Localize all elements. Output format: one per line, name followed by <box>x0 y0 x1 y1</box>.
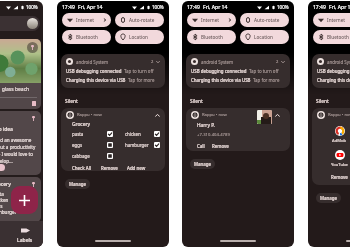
staticText: 2 <box>276 59 279 65</box>
staticText: Auto-rotate <box>254 17 280 23</box>
staticText: Manage <box>194 161 212 167</box>
staticText: Silent <box>65 98 78 105</box>
staticText: Silent <box>316 98 329 105</box>
staticText: android System <box>76 59 109 65</box>
button[interactable]: chicken <box>125 131 160 137</box>
button[interactable]: Call <box>197 143 205 149</box>
staticText: eggs <box>0 203 3 209</box>
button[interactable]: Auto-rotate <box>240 13 289 27</box>
button[interactable]: Remove <box>212 143 229 149</box>
button[interactable]: Bluetooth <box>62 30 111 44</box>
staticText: App idea <box>0 126 13 133</box>
staticText: hamburger <box>0 209 17 215</box>
button[interactable]: pasta <box>66 131 113 137</box>
button[interactable]: Pin <box>0 39 41 109</box>
staticText: about a productivity <box>0 144 36 150</box>
staticText: 2 <box>151 59 154 65</box>
button[interactable]: cabbage <box>66 153 113 159</box>
staticText: eggs <box>72 142 82 148</box>
other: Expand <box>156 60 160 64</box>
staticText: Sea glass beach <box>0 86 30 93</box>
staticText: Bluetooth <box>76 34 98 40</box>
staticText: Rappu • now <box>328 112 350 118</box>
button[interactable]: App idea <box>0 111 41 175</box>
staticText: Tap to turn off USB... <box>124 68 160 74</box>
button[interactable]: Remove <box>331 174 348 180</box>
staticText: 17:49 <box>62 4 75 11</box>
staticText: USB debugging connected <box>66 68 122 74</box>
staticText: pasta <box>0 191 4 197</box>
staticText: Rappu • now <box>202 112 227 118</box>
other: Pin <box>31 116 36 121</box>
staticText: Fri, Apr 14 <box>329 4 350 11</box>
staticText: USB debugging connected <box>191 68 247 74</box>
button[interactable]: Collapse <box>155 113 160 118</box>
staticText: AdMob <box>332 138 347 144</box>
staticText: Auto-rotate <box>129 17 155 23</box>
staticText: Silent <box>190 98 203 105</box>
button[interactable]: Grocery <box>0 177 41 222</box>
staticText: 100% <box>26 4 38 10</box>
staticText: Location <box>254 34 273 40</box>
button[interactable]: Manage <box>190 159 215 169</box>
staticText: chicken <box>125 131 141 137</box>
staticText: Tap to turn off USB... <box>249 68 285 74</box>
staticText: hamburger <box>125 142 149 148</box>
button[interactable]: Remove <box>101 165 118 171</box>
staticText: 17:49 <box>187 4 200 11</box>
staticText: Manage <box>320 195 338 201</box>
staticText: pasta <box>72 131 84 137</box>
staticText: app I would love to <box>0 151 34 157</box>
staticText: Tap for more opt... <box>253 77 285 83</box>
staticText: +7-310-404-4789 <box>197 132 230 138</box>
button[interactable]: Auto-rotate <box>115 13 164 27</box>
button[interactable]: Internet <box>187 13 236 27</box>
button[interactable]: Check All <box>72 165 92 171</box>
staticText: Charging this device via USB <box>191 77 251 83</box>
staticText: Charging this device via USB <box>66 77 126 83</box>
button[interactable]: AdMob <box>332 126 347 144</box>
staticText: Location <box>129 34 148 40</box>
staticText: Grocery <box>72 121 91 128</box>
staticText: Internet <box>201 17 220 23</box>
button[interactable]: Location <box>240 30 289 44</box>
button[interactable]: eggs <box>66 142 113 148</box>
button[interactable]: Manage <box>316 193 341 203</box>
staticText: Manage <box>69 181 87 187</box>
button[interactable]: Create note <box>11 186 38 214</box>
staticText: I had an awesome idea <box>0 137 41 143</box>
button[interactable] <box>0 16 40 31</box>
other: Expand <box>281 60 285 64</box>
staticText: Internet <box>327 17 346 23</box>
staticText: chicken <box>0 197 9 203</box>
button[interactable]: YouTube <box>331 150 348 168</box>
staticText: YouTube <box>331 162 348 168</box>
staticText: Charging this device via USB <box>317 77 350 83</box>
staticText: android System <box>327 59 350 65</box>
staticText: USB debugging connected <box>317 68 350 74</box>
staticText: cabbage <box>72 153 90 159</box>
staticText: 100% <box>277 4 289 10</box>
staticText: develop... <box>0 158 13 164</box>
button[interactable]: hamburger <box>125 142 160 148</box>
staticText: Fri, Apr 14 <box>203 4 228 11</box>
button[interactable]: Internet <box>62 13 111 27</box>
staticText: 17:49 <box>313 4 326 11</box>
staticText: Tap for more opt... <box>128 77 160 83</box>
staticText: Internet <box>76 17 95 23</box>
staticText: Bluetooth <box>201 34 223 40</box>
staticText: Rappu • now <box>77 112 102 118</box>
staticText: Bluetooth <box>327 34 349 40</box>
staticText: 100% <box>152 4 164 10</box>
button[interactable]: Location <box>115 30 164 44</box>
button[interactable]: Pin <box>27 42 38 53</box>
button[interactable]: Add new <box>127 165 146 171</box>
button[interactable]: Collapse <box>275 113 280 118</box>
staticText: Labels <box>17 237 33 244</box>
staticText: Harry P. <box>197 122 215 129</box>
button[interactable]: Bluetooth <box>313 30 350 44</box>
button[interactable]: Manage <box>65 179 90 189</box>
button[interactable]: Internet <box>313 13 350 27</box>
button[interactable]: Labels <box>17 226 33 244</box>
button[interactable]: Bluetooth <box>187 30 236 44</box>
